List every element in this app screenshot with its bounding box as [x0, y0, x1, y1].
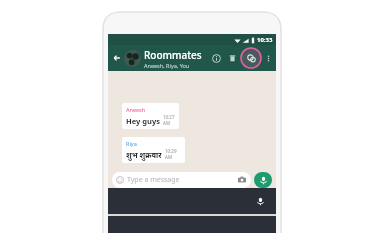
- button[interactable]: Voice input: [254, 195, 266, 207]
- staticText: Aneesh, Riya, You: [144, 62, 190, 69]
- button[interactable]: Roommates: [144, 48, 209, 69]
- staticText: Hey guys: [126, 116, 160, 126]
- staticText: 10:29 AM: [165, 148, 181, 160]
- staticText: Riya: [126, 140, 137, 147]
- button[interactable]: Delete: [226, 52, 239, 65]
- staticText: Roommates: [144, 48, 202, 62]
- button[interactable]: Record voice message: [254, 172, 272, 188]
- staticText: शुभ शुक्रवार: [126, 150, 162, 160]
- button[interactable]: Riya: [122, 137, 185, 163]
- button[interactable]: Type a message: [112, 172, 251, 188]
- button[interactable]: Group photo: [124, 50, 141, 67]
- button[interactable]: Back: [111, 52, 123, 64]
- button[interactable]: Aneesh: [122, 103, 179, 129]
- staticText: Aneesh: [126, 106, 146, 113]
- button[interactable]: Info: [209, 51, 224, 66]
- button[interactable]: Camera: [237, 175, 247, 185]
- button[interactable]: Mute notifications: [240, 47, 262, 69]
- staticText: 10:27 AM: [163, 114, 175, 126]
- staticText: Type a message: [127, 175, 180, 185]
- button[interactable]: More options: [263, 53, 274, 64]
- staticText: 10:33: [257, 36, 273, 44]
